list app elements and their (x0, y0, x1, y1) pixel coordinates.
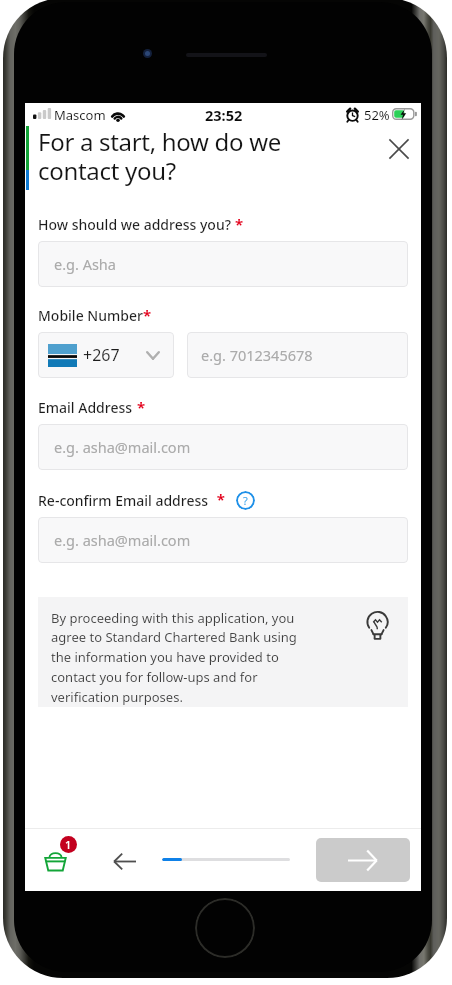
staticText: * (209, 489, 225, 509)
staticText: Mascom (54, 106, 106, 124)
staticText: Re-confirm Email address (38, 491, 209, 510)
staticText: +267 (83, 344, 120, 366)
staticText: * (143, 305, 152, 325)
staticText: * (231, 214, 244, 234)
staticText: ? (243, 493, 248, 508)
button[interactable]: e.g. 7012345678 (187, 332, 408, 378)
staticText: How should we address you? (38, 215, 231, 234)
button[interactable]: Help (236, 491, 255, 510)
staticText: By proceeding with this application, you… (51, 609, 361, 706)
staticText: Mobile Number (38, 306, 143, 325)
button[interactable]: e.g. asha@mail.com (38, 517, 408, 563)
staticText: 52% (364, 106, 390, 124)
staticText: For a start, how do we contact you? (38, 125, 348, 187)
button[interactable]: e.g. asha@mail.com (38, 424, 408, 470)
staticText: e.g. asha@mail.com (54, 530, 191, 550)
staticText: * (133, 397, 146, 417)
staticText: e.g. Asha (54, 254, 116, 274)
staticText: e.g. 7012345678 (201, 345, 313, 365)
button[interactable]: Cart (36, 829, 88, 877)
staticText: 23:52 (205, 105, 243, 125)
staticText: 1 (65, 837, 72, 852)
button[interactable]: e.g. Asha (38, 241, 408, 287)
button[interactable]: Next (316, 838, 410, 882)
staticText: e.g. asha@mail.com (54, 437, 191, 457)
button[interactable]: Close (377, 127, 421, 171)
staticText: Email Address (38, 398, 133, 417)
button[interactable]: Back (101, 838, 147, 884)
button[interactable]: +267 (38, 332, 174, 378)
button[interactable]: Home (195, 898, 255, 958)
